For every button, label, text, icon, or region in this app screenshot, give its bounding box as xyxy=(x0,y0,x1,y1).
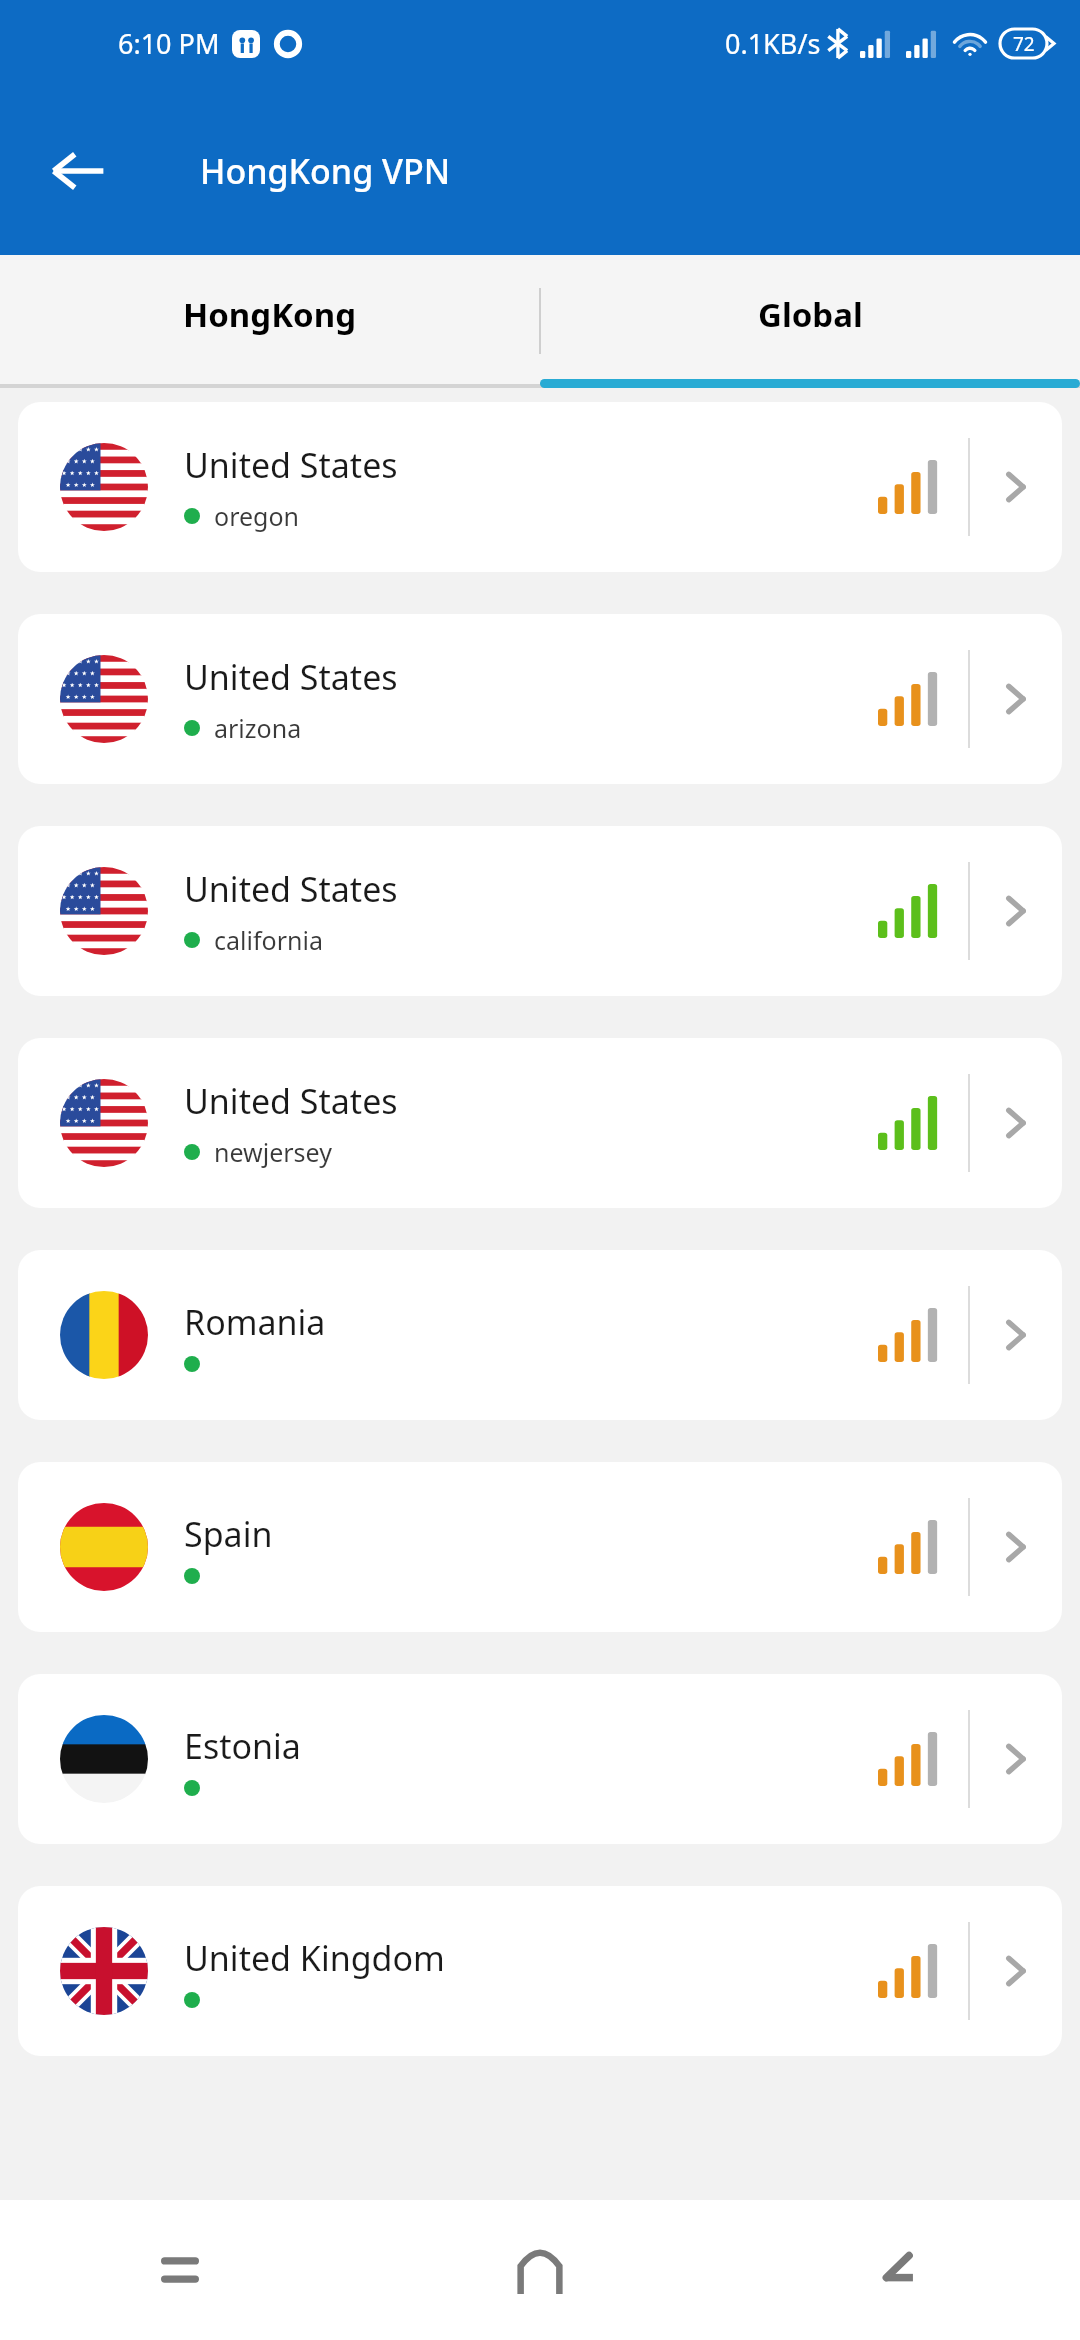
staticText: Global xyxy=(758,292,863,337)
button[interactable]: Home xyxy=(360,2200,720,2340)
staticText: 0.1KB/s xyxy=(725,25,821,62)
staticText: HongKong xyxy=(183,292,357,337)
staticText: arizona xyxy=(214,711,302,745)
staticText: Romania xyxy=(184,1299,326,1345)
button[interactable]: HongKong xyxy=(0,255,540,388)
staticText: 72 xyxy=(1013,31,1035,57)
staticText: HongKong VPN xyxy=(200,148,451,194)
staticText: california xyxy=(214,923,323,957)
button[interactable]: United States xyxy=(18,614,1062,784)
button[interactable]: United Kingdom xyxy=(18,1886,1062,2056)
button[interactable]: Global xyxy=(540,255,1080,388)
staticText: United States xyxy=(184,442,398,488)
button[interactable]: United States xyxy=(18,1038,1062,1208)
staticText: Spain xyxy=(184,1511,273,1557)
staticText: United States xyxy=(184,654,398,700)
staticText: United Kingdom xyxy=(184,1935,445,1981)
button[interactable]: Recents xyxy=(0,2200,360,2340)
staticText: newjersey xyxy=(214,1135,332,1169)
button[interactable]: United States xyxy=(18,402,1062,572)
staticText: United States xyxy=(184,1078,398,1124)
staticText: oregon xyxy=(214,499,300,533)
button[interactable]: Back xyxy=(720,2200,1080,2340)
staticText: 6:10 PM xyxy=(118,25,220,62)
staticText: United States xyxy=(184,866,398,912)
button[interactable]: Romania xyxy=(18,1250,1062,1420)
button[interactable]: Estonia xyxy=(18,1674,1062,1844)
staticText: Estonia xyxy=(184,1723,301,1769)
button[interactable]: Spain xyxy=(18,1462,1062,1632)
button[interactable]: United States xyxy=(18,826,1062,996)
button[interactable]: Back xyxy=(30,123,126,219)
